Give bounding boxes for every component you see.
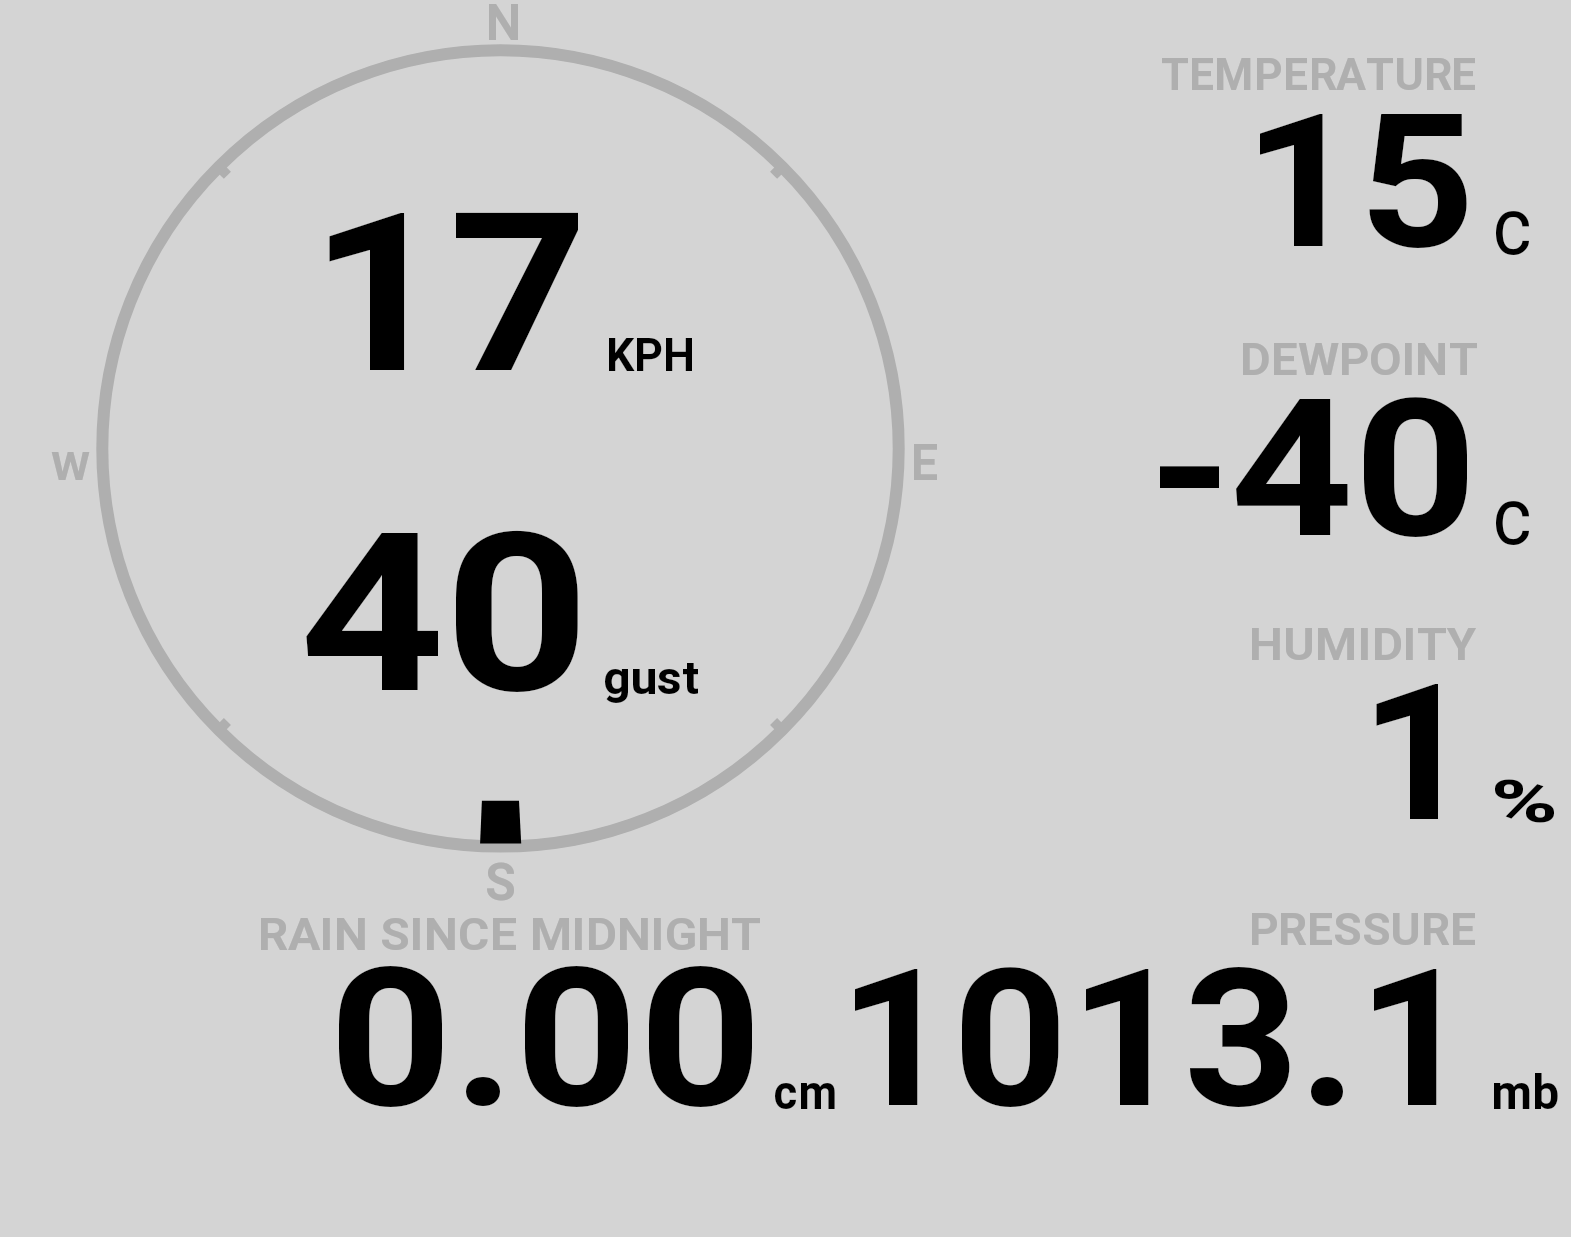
button[interactable]: Wind compass: 17 KPH, gusting 40, from t… bbox=[80, 28, 920, 870]
button[interactable]: Humidity 1 percent bbox=[1140, 610, 1570, 840]
button[interactable]: Dewpoint minus 40 degrees Celsius bbox=[1140, 325, 1570, 555]
button[interactable]: Rain since midnight 0.00 cm bbox=[250, 895, 870, 1130]
button[interactable]: Pressure 1013.1 millibars bbox=[1140, 895, 1570, 1130]
button[interactable]: Temperature 15 degrees Celsius bbox=[1140, 40, 1570, 270]
